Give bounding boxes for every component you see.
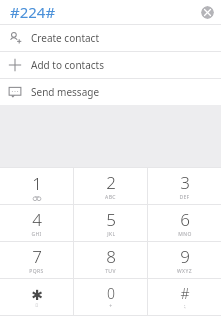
staticText: # [180,284,190,303]
button[interactable]: 7 [0,242,73,278]
button[interactable]: 0 [74,279,147,315]
staticText: MNO [178,231,192,238]
staticText: ⌷ [35,303,39,308]
staticText: Add to contacts [31,58,104,72]
staticText: 5 [106,208,116,231]
button[interactable]: 8 [74,242,147,278]
staticText: ✱ [31,287,43,303]
button[interactable]: 1 [0,168,73,204]
button[interactable]: Clear [201,6,214,19]
staticText: PQRS [29,268,44,275]
staticText: DEF [179,194,190,201]
staticText: 1 [32,172,42,195]
button[interactable]: 4 [0,205,73,241]
staticText: 4 [32,208,42,231]
staticText: WXYZ [177,268,192,275]
staticText: JKL [107,231,116,238]
staticText: 0 [107,284,115,303]
staticText: #224# [10,2,56,22]
staticText: 8 [106,245,116,268]
button[interactable]: # [148,279,221,315]
staticText: 2 [106,171,116,194]
button[interactable]: Add to contacts [0,52,221,78]
staticText: Send message [31,85,100,99]
button[interactable]: Send message [0,79,221,105]
staticText: TUV [105,268,116,275]
staticText: 6 [180,208,190,231]
staticText: + [109,303,113,310]
button[interactable]: 9 [148,242,221,278]
staticText: 7 [32,245,42,268]
staticText: GHI [31,231,42,238]
staticText: Create contact [31,31,100,45]
button[interactable]: 3 [148,168,221,204]
button[interactable]: 5 [74,205,147,241]
button[interactable]: 6 [148,205,221,241]
staticText: ⁏ [184,303,186,310]
button[interactable]: 2 [74,168,147,204]
button[interactable]: Create contact [0,25,221,51]
staticText: 3 [180,171,190,194]
staticText: ABC [105,194,116,201]
staticText: 9 [180,245,190,268]
button[interactable]: ✱ [0,279,73,315]
